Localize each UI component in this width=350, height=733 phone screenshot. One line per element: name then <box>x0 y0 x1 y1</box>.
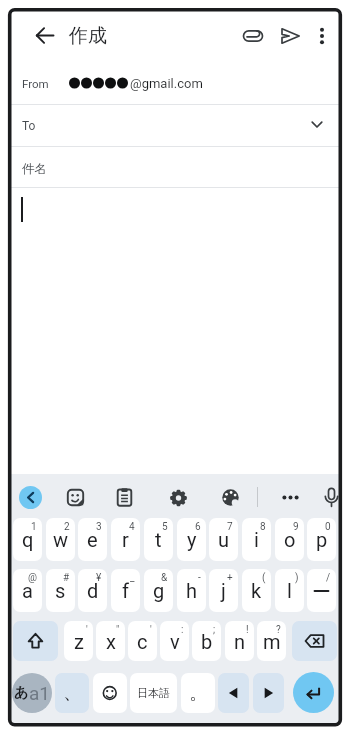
button[interactable]: k <box>242 569 271 612</box>
staticText: ; <box>213 624 216 636</box>
staticText: 5 <box>162 521 168 533</box>
button[interactable]: 、 <box>55 673 89 713</box>
button[interactable]: g <box>144 569 173 612</box>
staticText: 8 <box>260 521 266 533</box>
button[interactable] <box>11 105 339 146</box>
button[interactable] <box>320 486 339 509</box>
staticText: m <box>263 630 281 653</box>
button[interactable] <box>279 486 302 509</box>
staticText: i <box>254 528 259 551</box>
button[interactable] <box>93 673 127 713</box>
staticText: ? <box>276 624 281 636</box>
button[interactable]: j <box>209 569 238 612</box>
staticText: @ <box>28 572 37 584</box>
button[interactable] <box>292 621 337 661</box>
button[interactable] <box>13 621 58 661</box>
staticText: # <box>63 572 70 584</box>
button[interactable] <box>309 23 335 49</box>
button[interactable]: p <box>307 518 336 561</box>
button[interactable] <box>277 23 303 49</box>
staticText: b <box>201 630 213 653</box>
button[interactable]: n <box>225 621 254 661</box>
button[interactable]: y <box>177 518 206 561</box>
staticText: c <box>137 630 148 653</box>
staticText: ' <box>86 624 88 636</box>
staticText: x <box>106 630 116 653</box>
staticText: 4 <box>129 521 135 533</box>
staticText: 9 <box>293 521 299 533</box>
staticText: ' <box>150 624 152 636</box>
staticText: 7 <box>227 521 233 533</box>
button[interactable]: 。 <box>181 673 215 713</box>
staticText: 2 <box>64 521 70 533</box>
button[interactable]: m <box>257 621 286 661</box>
button[interactable]: b <box>192 621 221 661</box>
staticText: From <box>22 77 49 90</box>
button[interactable] <box>25 16 65 56</box>
button[interactable]: r <box>111 518 140 561</box>
staticText: 作成 <box>69 24 107 48</box>
staticText: e <box>87 528 98 551</box>
staticText: ) <box>295 572 299 584</box>
staticText: v <box>170 630 180 653</box>
button[interactable]: s <box>46 569 75 612</box>
staticText: n <box>234 630 246 653</box>
button[interactable]: d <box>78 569 107 612</box>
button[interactable]: 日本語 <box>130 673 177 713</box>
button[interactable]: u <box>209 518 238 561</box>
staticText: " <box>116 624 120 636</box>
staticText: + <box>227 572 233 584</box>
staticText: / <box>326 572 331 584</box>
staticText: u <box>218 528 230 551</box>
button[interactable]: w <box>46 518 75 561</box>
button[interactable]: h <box>177 569 206 612</box>
button[interactable]: z <box>64 621 93 661</box>
button[interactable]: x <box>96 621 125 661</box>
button[interactable] <box>167 486 190 509</box>
button[interactable]: q <box>13 518 42 561</box>
staticText: a <box>22 579 33 602</box>
staticText: s <box>55 579 66 602</box>
button[interactable] <box>293 672 334 713</box>
staticText: y <box>187 528 197 551</box>
button[interactable] <box>218 673 249 713</box>
staticText: o <box>284 528 296 551</box>
button[interactable]: o <box>275 518 304 561</box>
button[interactable] <box>240 23 266 49</box>
staticText: @gmail.com <box>130 76 203 91</box>
staticText: 件名 <box>22 161 47 177</box>
button[interactable]: f <box>111 569 140 612</box>
staticText: 、 <box>63 681 82 705</box>
button[interactable]: e <box>78 518 107 561</box>
staticText: w <box>53 528 69 551</box>
button[interactable]: / <box>307 569 336 612</box>
button[interactable] <box>19 486 42 509</box>
staticText: : <box>181 624 184 636</box>
staticText: To <box>22 119 36 133</box>
staticText: あ <box>14 684 29 702</box>
button[interactable]: a <box>13 569 42 612</box>
staticText: q <box>22 528 34 551</box>
staticText: 3 <box>96 521 102 533</box>
button[interactable]: c <box>128 621 157 661</box>
staticText: j <box>221 579 226 602</box>
staticText: r <box>122 528 129 551</box>
button[interactable]: l <box>275 569 304 612</box>
staticText: a1 <box>29 682 51 704</box>
staticText: k <box>251 579 262 602</box>
button[interactable]: i <box>242 518 271 561</box>
staticText: f <box>122 579 129 602</box>
staticText: ¥ <box>96 572 102 584</box>
button[interactable] <box>63 486 88 509</box>
staticText: 0 <box>325 521 331 533</box>
staticText: - <box>198 572 201 584</box>
button[interactable]: あ <box>12 673 52 713</box>
button[interactable]: t <box>144 518 173 561</box>
button[interactable]: v <box>160 621 189 661</box>
button[interactable] <box>112 486 137 509</box>
staticText: d <box>87 579 99 602</box>
button[interactable] <box>253 673 284 713</box>
button[interactable] <box>219 486 242 509</box>
staticText: t <box>155 528 162 551</box>
staticText: 1 <box>31 521 37 533</box>
